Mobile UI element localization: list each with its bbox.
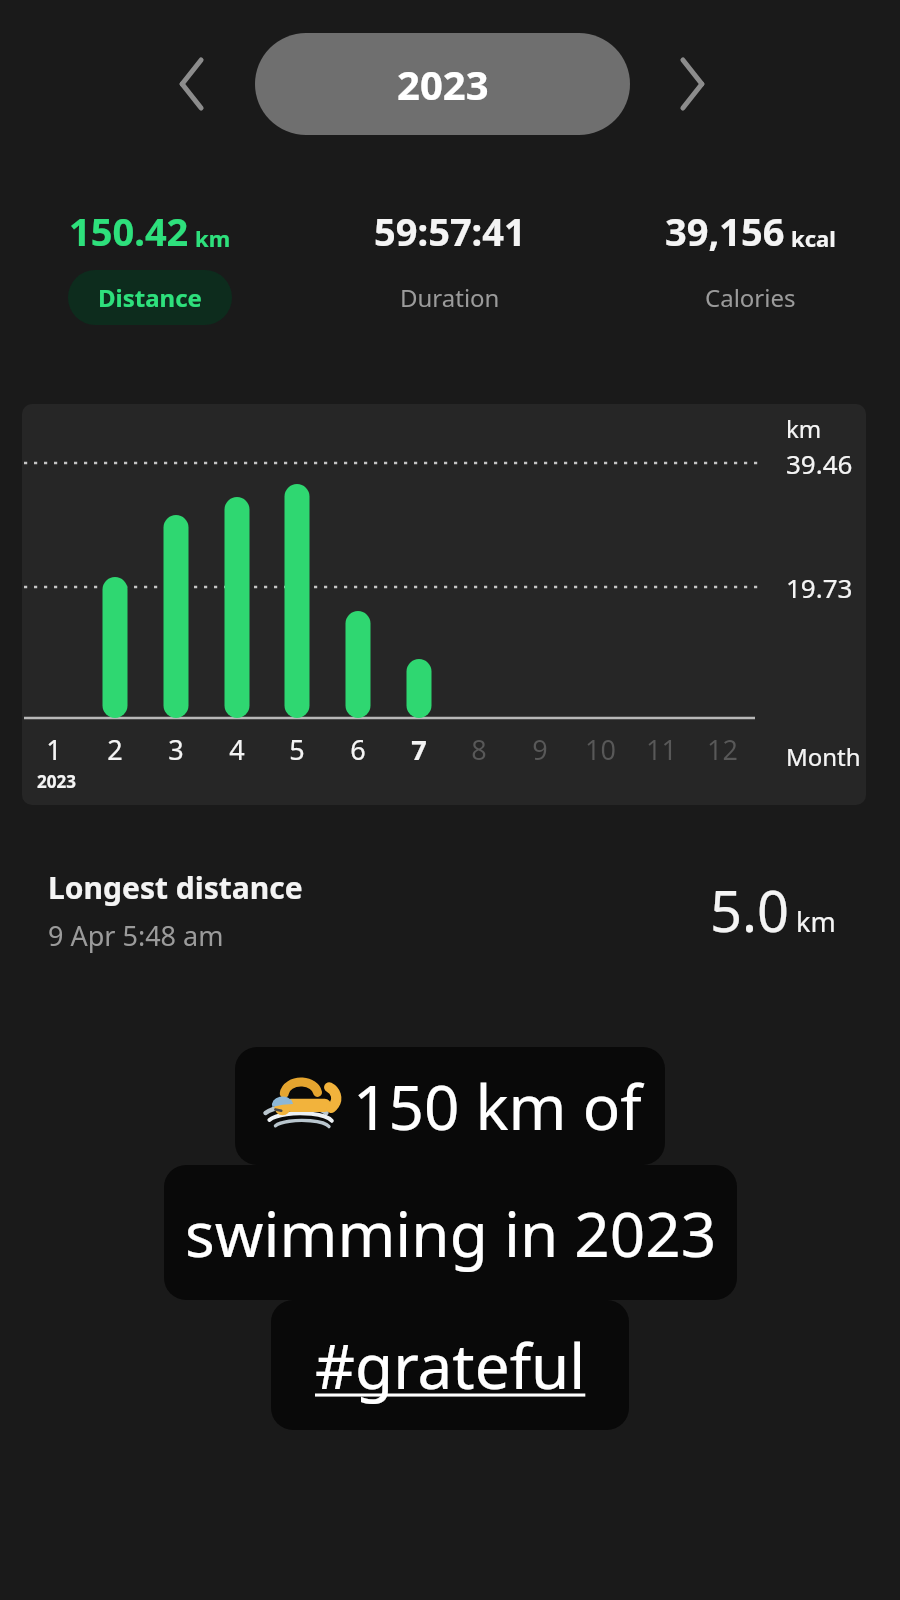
staticText: #grateful xyxy=(315,1323,586,1407)
staticText: 11 xyxy=(646,731,677,768)
staticText: 150.42 xyxy=(69,205,189,257)
staticText: kcal xyxy=(791,223,836,253)
staticText: 59:57:41 xyxy=(374,205,526,257)
staticText: km xyxy=(786,412,822,445)
button[interactable]: 2023 xyxy=(255,33,630,135)
staticText: 19.73 xyxy=(786,570,853,605)
staticText: Calories xyxy=(705,281,796,314)
staticText: 7 xyxy=(411,731,427,768)
staticText: swimming in 2023 xyxy=(185,1191,717,1275)
staticText: 2023 xyxy=(37,770,76,793)
staticText: km xyxy=(195,223,231,253)
staticText: 3 xyxy=(168,731,184,768)
staticText: Longest distance xyxy=(48,867,303,908)
button[interactable]: Previous year xyxy=(160,52,224,116)
button[interactable]: 59:57:41 xyxy=(300,205,600,325)
button[interactable]: 39,156 xyxy=(600,205,900,325)
staticText: 5.0 xyxy=(710,872,790,948)
staticText: Month xyxy=(786,740,861,773)
button[interactable]: 150.42 xyxy=(0,205,300,325)
button[interactable]: Longest distance xyxy=(0,855,900,965)
staticText: 2023 xyxy=(397,57,489,111)
staticText: 1 xyxy=(46,731,62,768)
staticText: km xyxy=(796,903,836,940)
staticText: Distance xyxy=(98,281,202,314)
staticText: 39.46 xyxy=(786,446,853,481)
staticText: Duration xyxy=(400,281,500,314)
staticText: 2 xyxy=(107,731,123,768)
staticText: 39,156 xyxy=(665,205,785,257)
staticText: 9 Apr 5:48 am xyxy=(48,917,224,954)
staticText: 8 xyxy=(471,731,487,768)
staticText: 9 xyxy=(532,731,548,768)
staticText: 6 xyxy=(350,731,366,768)
staticText: 4 xyxy=(229,731,245,768)
staticText: 10 xyxy=(585,731,616,768)
staticText: 12 xyxy=(707,731,738,768)
staticText: 150 km of xyxy=(353,1064,642,1148)
staticText: 5 xyxy=(289,731,305,768)
button[interactable]: Next year xyxy=(660,52,724,116)
